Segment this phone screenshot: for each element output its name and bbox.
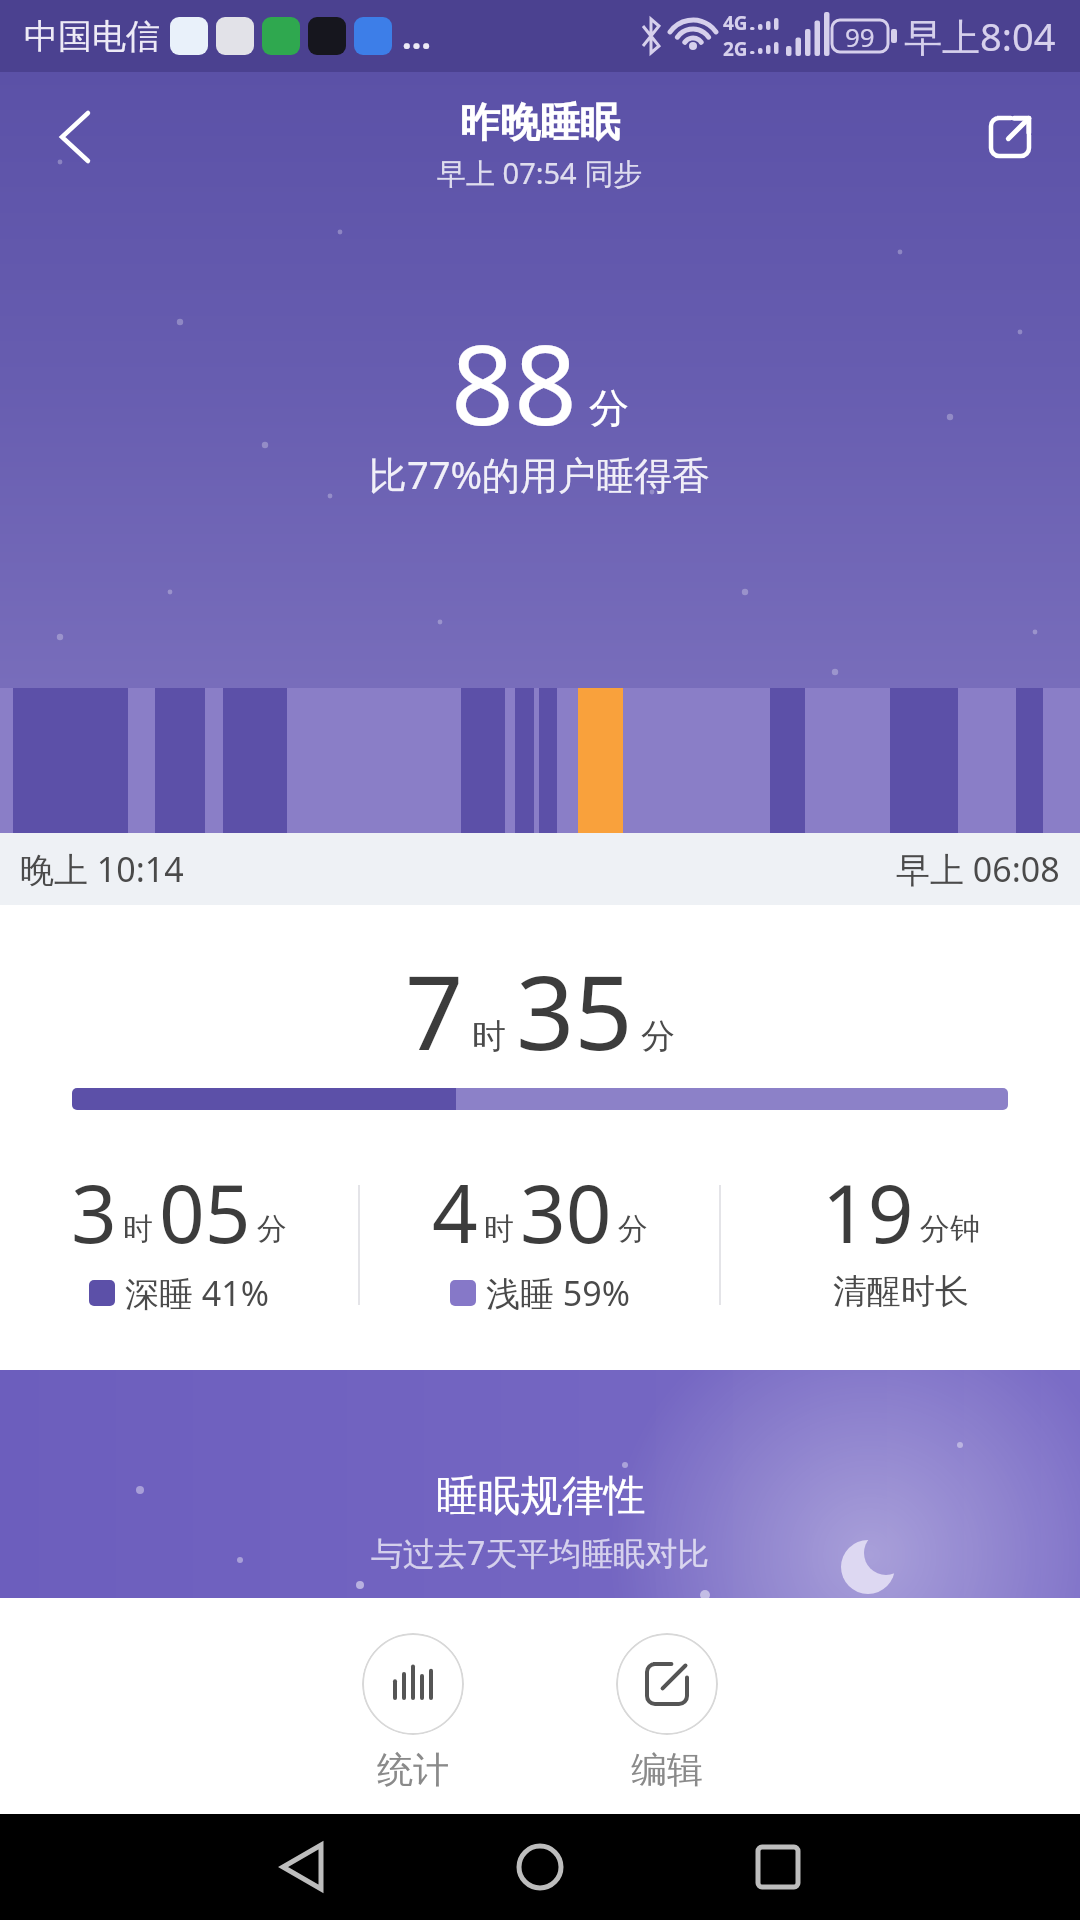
button[interactable] [44, 107, 104, 167]
staticText: 统计 [377, 1747, 449, 1792]
staticText: 编辑 [631, 1747, 703, 1792]
staticText: 深睡 41% [125, 1270, 269, 1316]
staticText: 分 [257, 1210, 287, 1248]
staticText: 分钟 [920, 1210, 980, 1248]
staticText: 30 [520, 1157, 612, 1266]
staticText: 晚上 10:14 [20, 846, 184, 892]
staticText: … [402, 13, 432, 59]
staticText: 3 [71, 1157, 117, 1266]
staticText: 05 [159, 1157, 251, 1266]
staticText: 分 [618, 1210, 648, 1248]
staticText: 与过去7天平均睡眠对比 [371, 1531, 710, 1575]
button[interactable]: 统计 [362, 1633, 464, 1792]
button[interactable] [421, 1814, 659, 1920]
staticText: 早上8:04 [904, 10, 1056, 62]
staticText: 睡眠规律性 [436, 1470, 646, 1523]
staticText: 35 [516, 941, 633, 1080]
button[interactable] [984, 111, 1036, 163]
staticText: 早上 07:54 同步 [437, 153, 643, 193]
staticText: 4G [723, 10, 748, 36]
staticText: 浅睡 59% [486, 1270, 630, 1316]
staticText: 19 [822, 1157, 914, 1266]
button[interactable] [659, 1814, 897, 1920]
staticText: 7 [405, 941, 464, 1080]
button[interactable]: 睡眠规律性 [0, 1370, 1080, 1598]
button[interactable] [183, 1814, 421, 1920]
staticText: 昨晚睡眠 [460, 97, 620, 147]
staticText: 时 [472, 1015, 506, 1058]
staticText: 清醒时长 [833, 1270, 969, 1313]
staticText: 分 [641, 1015, 675, 1058]
staticText: 早上 06:08 [896, 846, 1060, 892]
staticText: 中国电信 [24, 15, 160, 58]
staticText: 分 [589, 383, 629, 433]
staticText: 99 [845, 19, 875, 54]
staticText: 4 [432, 1157, 478, 1266]
staticText: 88 [451, 307, 577, 457]
button[interactable]: 编辑 [616, 1633, 718, 1792]
staticText: 比77%的用户睡得香 [369, 448, 711, 500]
staticText: 2G [723, 36, 748, 62]
staticText: 时 [123, 1210, 153, 1248]
staticText: 时 [484, 1210, 514, 1248]
